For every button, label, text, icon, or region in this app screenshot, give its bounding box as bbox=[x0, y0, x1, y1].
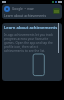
staticText: games. Open the app and tap the bbox=[4, 41, 53, 45]
staticText: achievements to see the list. bbox=[4, 49, 46, 53]
button[interactable]: Google • now bbox=[2, 4, 62, 19]
staticText: In-app achievements let you track bbox=[4, 33, 54, 37]
staticText: profile icon, then select bbox=[4, 45, 38, 49]
staticText: Google • now bbox=[12, 7, 53, 11]
staticText: Learn about achievements bbox=[4, 13, 47, 18]
staticText: progress across your favourite bbox=[4, 37, 49, 41]
staticText: Learn about achievements bbox=[4, 25, 58, 31]
button[interactable]: Learn about achievements bbox=[2, 23, 62, 81]
